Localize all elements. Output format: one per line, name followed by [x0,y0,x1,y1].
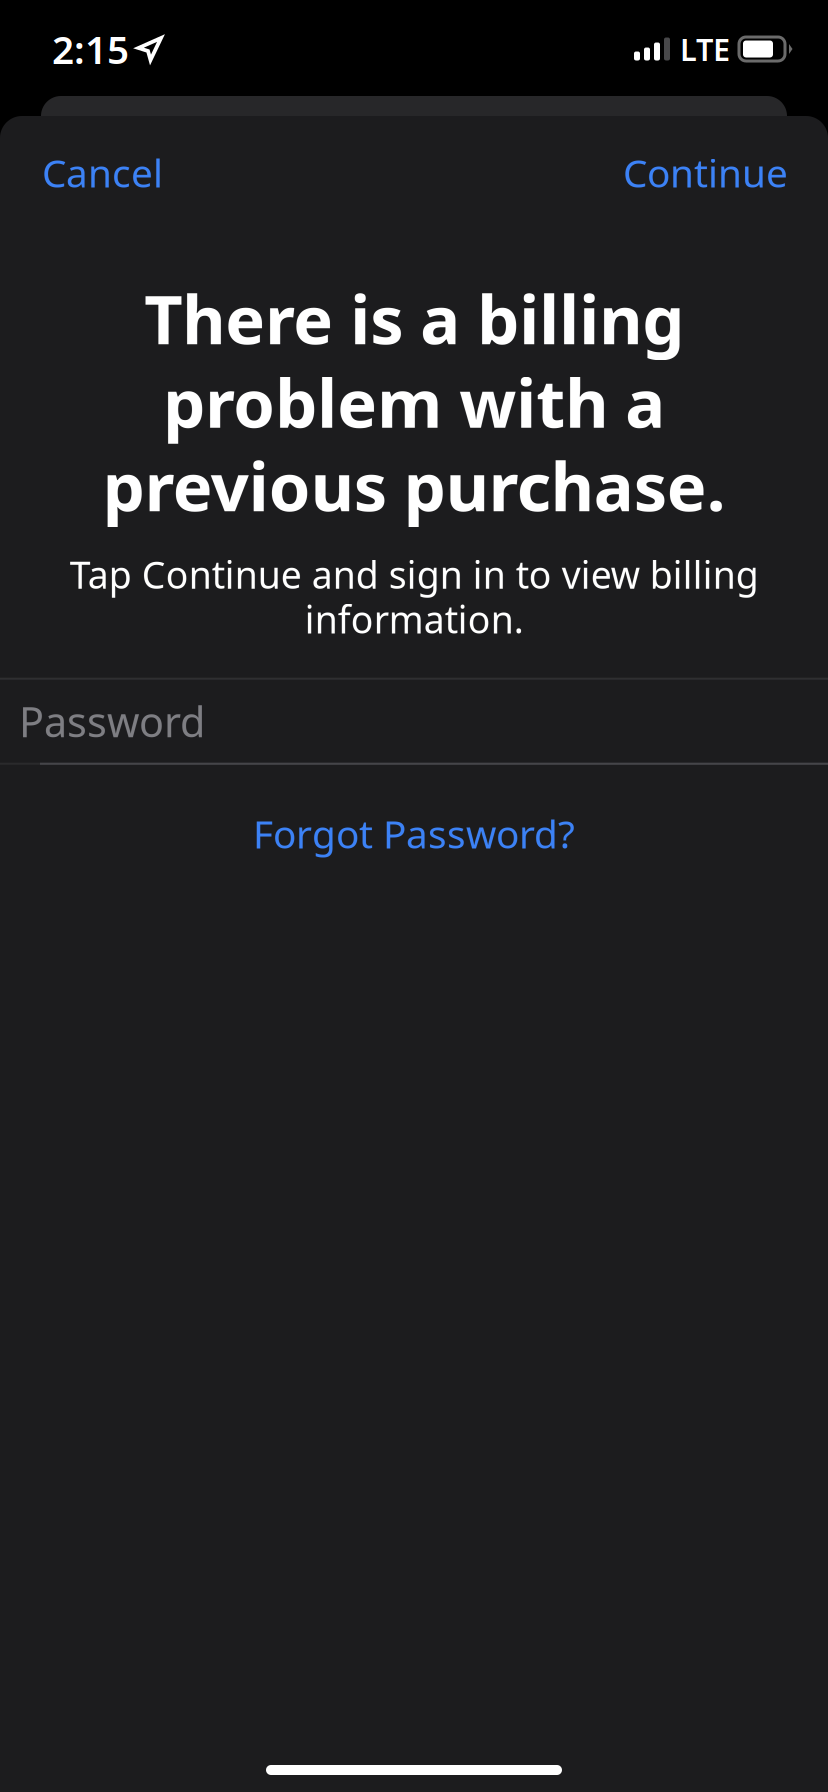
staticText: 2:15 [52,23,129,75]
staticText: Cancel [42,147,163,198]
staticText: Password [19,694,205,749]
staticText: Continue [623,147,788,198]
staticText: LTE [680,29,730,69]
staticText: Tap Continue and sign in to view billing… [69,550,758,644]
button[interactable]: Cancel [0,116,189,229]
staticText: There is a billing problem with a previo… [102,274,725,530]
staticText: Forgot Password? [253,808,575,859]
button[interactable]: Password [0,680,828,763]
button[interactable]: Continue [597,116,828,229]
button[interactable]: Forgot Password? [229,798,599,869]
